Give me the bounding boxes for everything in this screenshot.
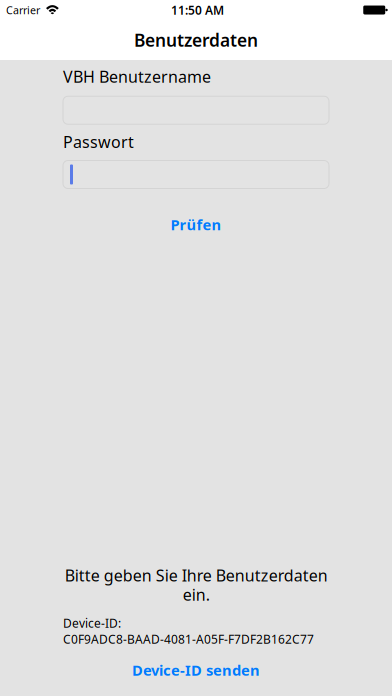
staticText: VBH Benutzername bbox=[63, 66, 211, 87]
button[interactable]: Passwort bbox=[63, 160, 329, 188]
button[interactable]: Prüfen bbox=[63, 214, 329, 234]
button[interactable]: Device-ID senden bbox=[63, 662, 329, 678]
staticText: Device-ID: bbox=[63, 615, 121, 631]
staticText: Carrier bbox=[6, 3, 40, 17]
staticText: 11:50 AM bbox=[171, 2, 224, 18]
staticText: C0F9ADC8-BAAD-4081-A05F-F7DF2B162C77 bbox=[63, 631, 314, 647]
staticText: Passwort bbox=[63, 131, 134, 152]
staticText: Prüfen bbox=[170, 215, 221, 234]
staticText: Benutzerdaten bbox=[134, 28, 258, 51]
staticText: Device-ID senden bbox=[132, 660, 260, 680]
staticText: Bitte geben Sie Ihre Benutzerdaten ein. bbox=[64, 565, 327, 605]
